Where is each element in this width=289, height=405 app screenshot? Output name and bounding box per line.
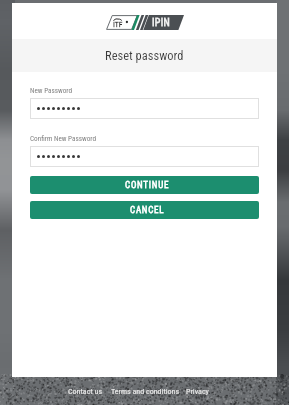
staticText: ITF xyxy=(113,20,123,29)
staticText: Terms and conditions xyxy=(111,387,180,396)
button[interactable]: CANCEL xyxy=(30,201,259,219)
staticText: New Password xyxy=(30,86,73,94)
staticText: Reset password xyxy=(105,48,184,63)
staticText: CONTINUE xyxy=(125,180,170,191)
staticText: Confirm New Password xyxy=(30,134,96,142)
button[interactable] xyxy=(30,98,259,119)
button[interactable] xyxy=(30,146,259,167)
staticText: Privacy xyxy=(186,387,209,396)
staticText: Contact us xyxy=(68,387,103,396)
button[interactable]: Privacy xyxy=(185,387,210,396)
button[interactable]: Contact us xyxy=(67,387,104,396)
staticText: IPIN xyxy=(152,17,170,29)
button[interactable]: CONTINUE xyxy=(30,176,259,194)
button[interactable]: Terms and conditions xyxy=(110,387,181,396)
staticText: CANCEL xyxy=(130,205,165,216)
